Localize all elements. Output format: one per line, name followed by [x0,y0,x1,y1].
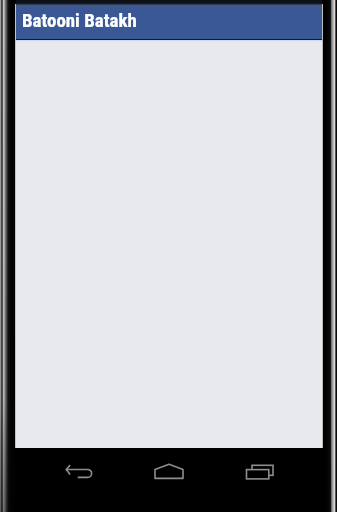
staticText: Batooni Batakh [22,9,137,31]
button[interactable]: Recent apps [238,448,278,512]
button[interactable]: Back [59,448,99,512]
button[interactable]: Home [149,448,189,512]
